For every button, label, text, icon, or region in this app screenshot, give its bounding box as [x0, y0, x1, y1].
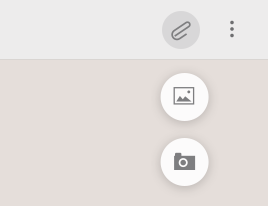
button[interactable]: Photo library [161, 73, 209, 121]
button[interactable]: Attach [162, 11, 200, 49]
button[interactable]: More options [216, 10, 248, 48]
button[interactable]: Camera [161, 138, 209, 186]
